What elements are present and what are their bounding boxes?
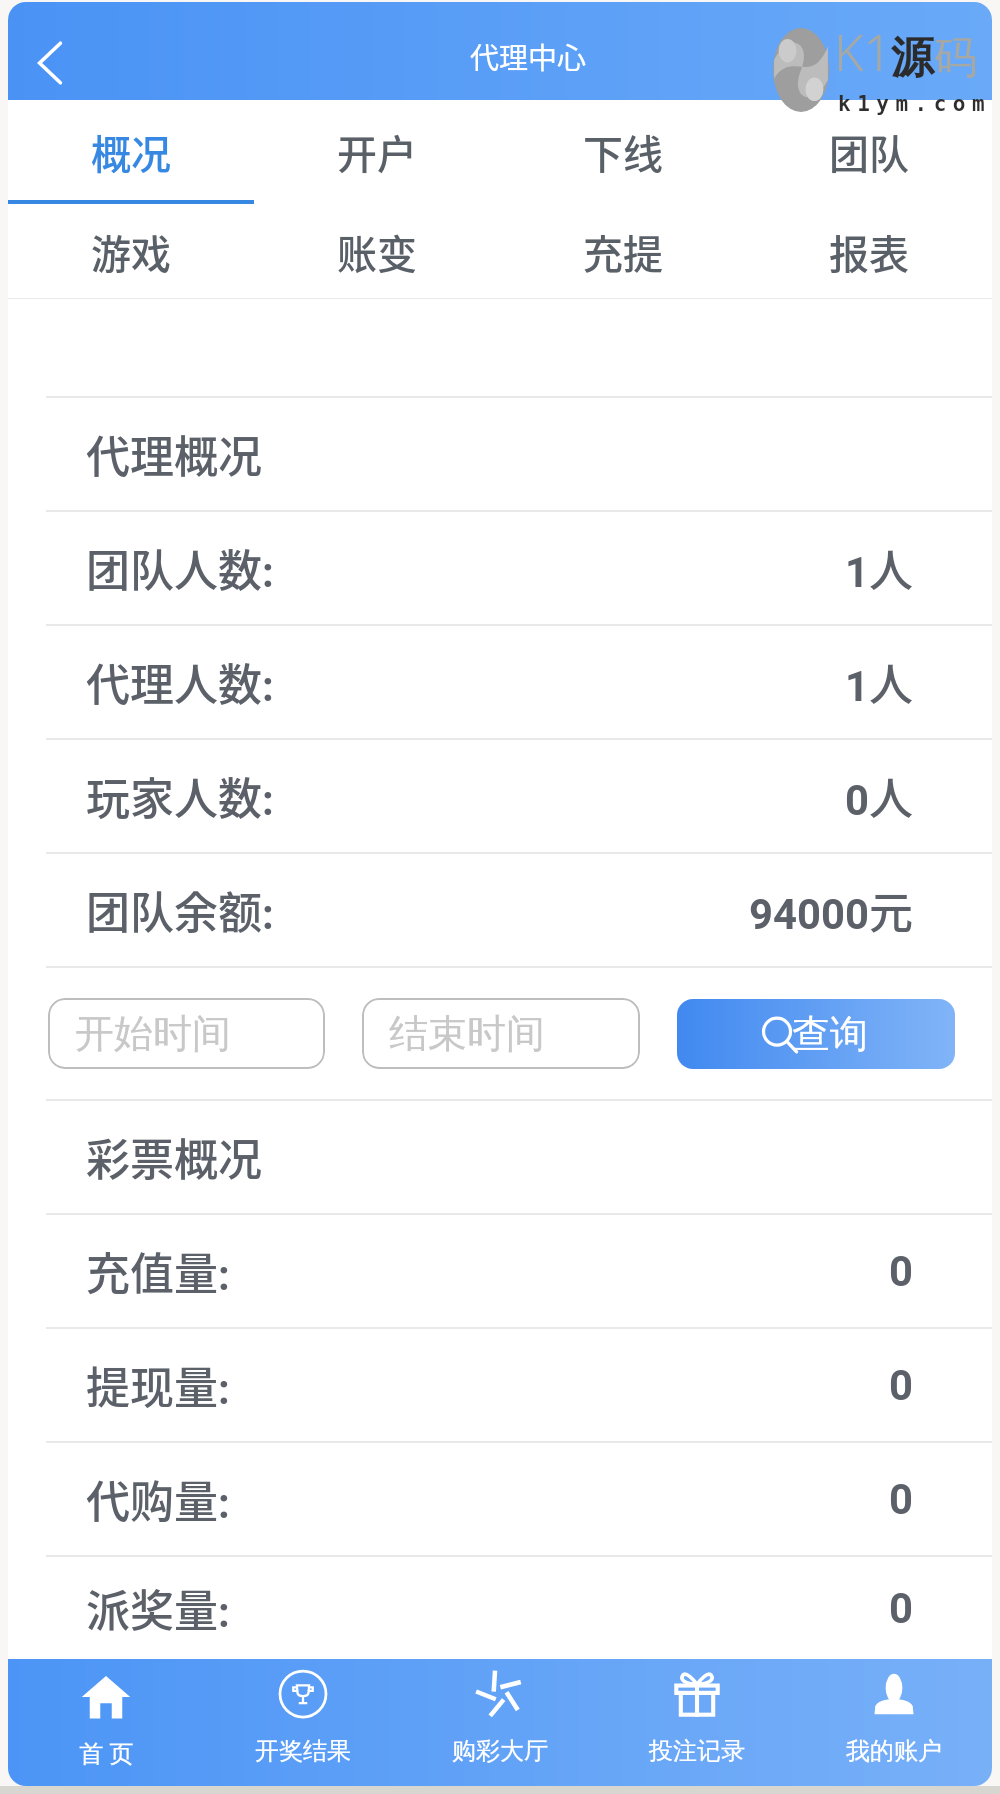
staticText: 0 (889, 1584, 913, 1633)
staticText: 结束时间 (389, 1009, 545, 1058)
staticText: 0 (889, 1361, 913, 1410)
button[interactable]: Back (8, 2, 92, 100)
staticText: 充值量: (86, 1239, 230, 1303)
button[interactable]: 购彩大厅 (401, 1659, 598, 1786)
staticText: 码 (934, 31, 977, 85)
staticText: 账变 (337, 223, 417, 281)
staticText: 查询 (792, 1010, 868, 1058)
staticText: 派奖量: (86, 1576, 230, 1640)
button[interactable]: 开户 (254, 100, 500, 204)
button[interactable]: 概况 (8, 100, 254, 204)
staticText: 开始时间 (75, 1009, 231, 1058)
staticText: 团队人数: (86, 536, 274, 600)
button[interactable]: 报表 (746, 204, 992, 298)
staticText: 投注记录 (649, 1736, 745, 1766)
staticText: 彩票概况 (86, 1125, 262, 1189)
button[interactable]: 派奖量: (8, 1557, 992, 1659)
button[interactable]: 查询 (677, 999, 955, 1069)
staticText: 0人 (845, 764, 913, 828)
staticText: 代理人数: (86, 650, 274, 714)
staticText: 报表 (829, 223, 909, 281)
staticText: 0 (889, 1475, 913, 1524)
button[interactable]: 团队 (746, 100, 992, 204)
staticText: 源 (891, 31, 934, 85)
button[interactable]: 开奖结果 (204, 1659, 401, 1786)
button[interactable]: 代购量: (8, 1443, 992, 1555)
button[interactable]: 玩家人数: (8, 740, 992, 852)
button[interactable]: 结束时间 (362, 998, 640, 1069)
button[interactable]: 提现量: (8, 1329, 992, 1441)
staticText: 代理概况 (86, 422, 262, 486)
staticText: 购彩大厅 (452, 1736, 548, 1766)
button[interactable]: 充提 (500, 204, 746, 298)
button[interactable]: 游戏 (8, 204, 254, 298)
staticText: 团队余额: (86, 878, 274, 942)
button[interactable]: 团队余额: (8, 854, 992, 966)
staticText: 概况 (91, 123, 171, 181)
staticText: 1人 (845, 536, 913, 600)
button[interactable]: 下线 (500, 100, 746, 204)
staticText: 代购量: (86, 1467, 230, 1531)
button[interactable]: 充值量: (8, 1215, 992, 1327)
staticText: 开奖结果 (255, 1736, 351, 1766)
button[interactable]: 账变 (254, 204, 500, 298)
staticText: k1ym.com (838, 92, 992, 116)
staticText: 我的账户 (846, 1736, 942, 1766)
button[interactable]: 代理人数: (8, 626, 992, 738)
staticText: 玩家人数: (86, 764, 274, 828)
button[interactable]: 投注记录 (598, 1659, 795, 1786)
staticText: 94000元 (749, 878, 913, 942)
staticText: 1人 (845, 650, 913, 714)
staticText: K1 (834, 18, 892, 86)
button[interactable]: 首 页 (8, 1659, 204, 1786)
staticText: 提现量: (86, 1353, 230, 1417)
staticText: 团队 (829, 123, 909, 181)
staticText: 代理中心 (470, 35, 587, 77)
staticText: 开户 (337, 123, 417, 181)
button[interactable]: 团队人数: (8, 512, 992, 624)
staticText: 首 页 (79, 1736, 134, 1769)
staticText: 充提 (583, 223, 663, 281)
button[interactable]: 我的账户 (795, 1659, 992, 1786)
button[interactable]: 开始时间 (48, 998, 325, 1069)
staticText: 0 (889, 1247, 913, 1296)
staticText: 游戏 (91, 223, 171, 281)
staticText: 下线 (583, 123, 663, 181)
